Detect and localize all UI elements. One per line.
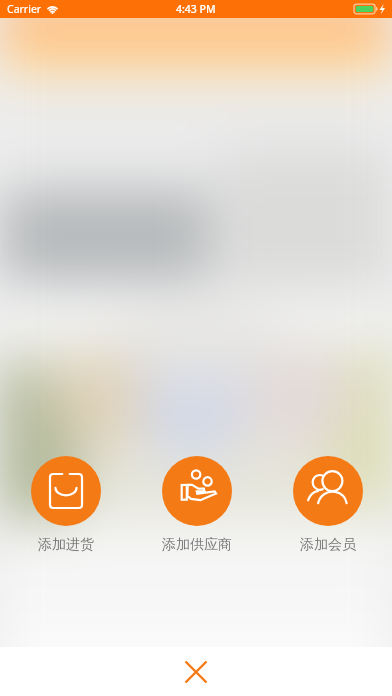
staticText: 添加会员	[300, 536, 356, 554]
staticText: 添加供应商	[162, 536, 232, 554]
staticText: 4:43 PM	[176, 2, 216, 16]
button[interactable]: 添加会员	[273, 456, 383, 554]
staticText: 添加进货	[38, 536, 94, 554]
staticText: Carrier	[7, 2, 42, 16]
button[interactable]: 添加供应商	[142, 456, 252, 554]
button[interactable]: Close	[173, 649, 219, 695]
button[interactable]: 添加进货	[11, 456, 121, 554]
